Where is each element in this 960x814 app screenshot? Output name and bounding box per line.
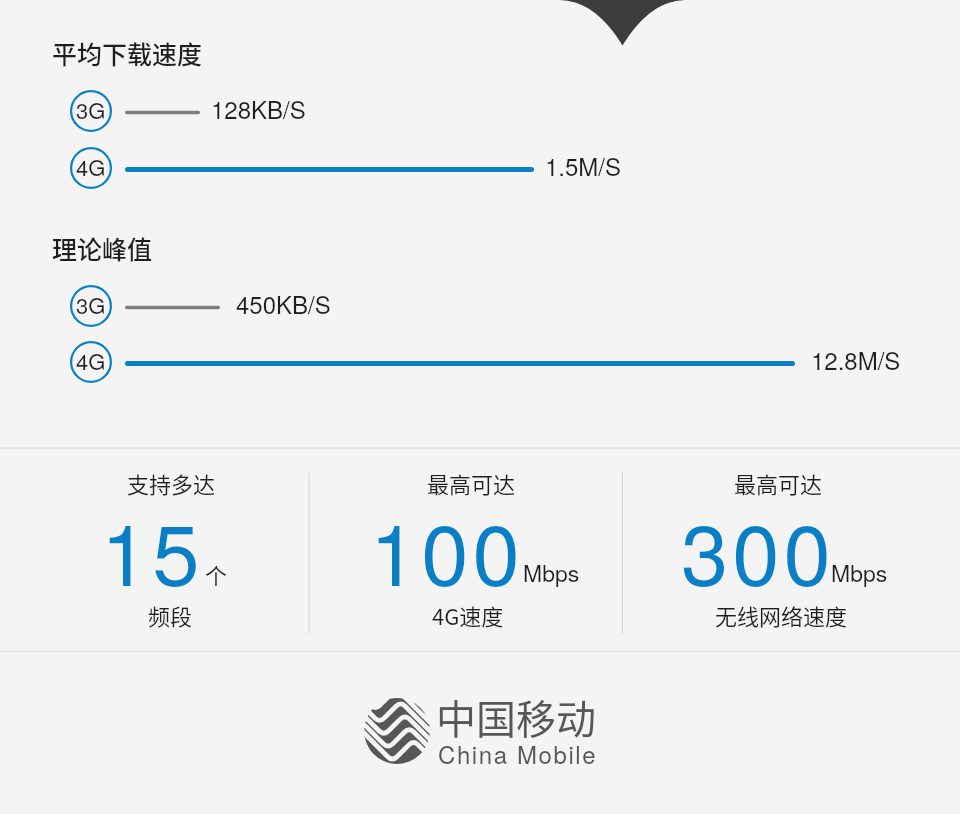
staticText: 最高可达 (734, 467, 823, 499)
staticText: 支持多达 (127, 467, 216, 499)
staticText: 450KB/S (236, 286, 331, 320)
staticText: 12.8M/S (811, 342, 901, 376)
staticText: 100 (370, 488, 524, 610)
button[interactable]: 3G (70, 285, 112, 327)
staticText: 4G速度 (432, 599, 504, 631)
staticText: 中国移动 (436, 688, 596, 746)
staticText: 平均下载速度 (52, 35, 203, 71)
staticText: 个 (205, 558, 228, 590)
staticText: Mbps (831, 556, 888, 589)
staticText: China Mobile (438, 736, 598, 770)
staticText: 1.5M/S (545, 148, 622, 182)
staticText: 频段 (148, 599, 193, 631)
staticText: 3G (76, 289, 106, 321)
button[interactable] (0, 449, 309, 650)
button[interactable] (310, 449, 622, 650)
staticText: 128KB/S (211, 91, 306, 125)
staticText: 4G (76, 345, 106, 377)
button[interactable]: 4G (70, 147, 112, 189)
staticText: 最高可达 (427, 467, 516, 499)
staticText: 300 (681, 488, 835, 610)
button[interactable] (623, 449, 960, 650)
button[interactable]: 4G (70, 341, 112, 383)
button[interactable]: 3G (70, 90, 112, 132)
staticText: 4G (76, 151, 106, 183)
staticText: 理论峰值 (52, 230, 153, 266)
staticText: Mbps (523, 556, 580, 589)
staticText: 15 (101, 488, 204, 610)
button[interactable]: China Mobile (360, 690, 600, 770)
staticText: 无线网络速度 (715, 599, 848, 631)
staticText: 3G (76, 94, 106, 126)
